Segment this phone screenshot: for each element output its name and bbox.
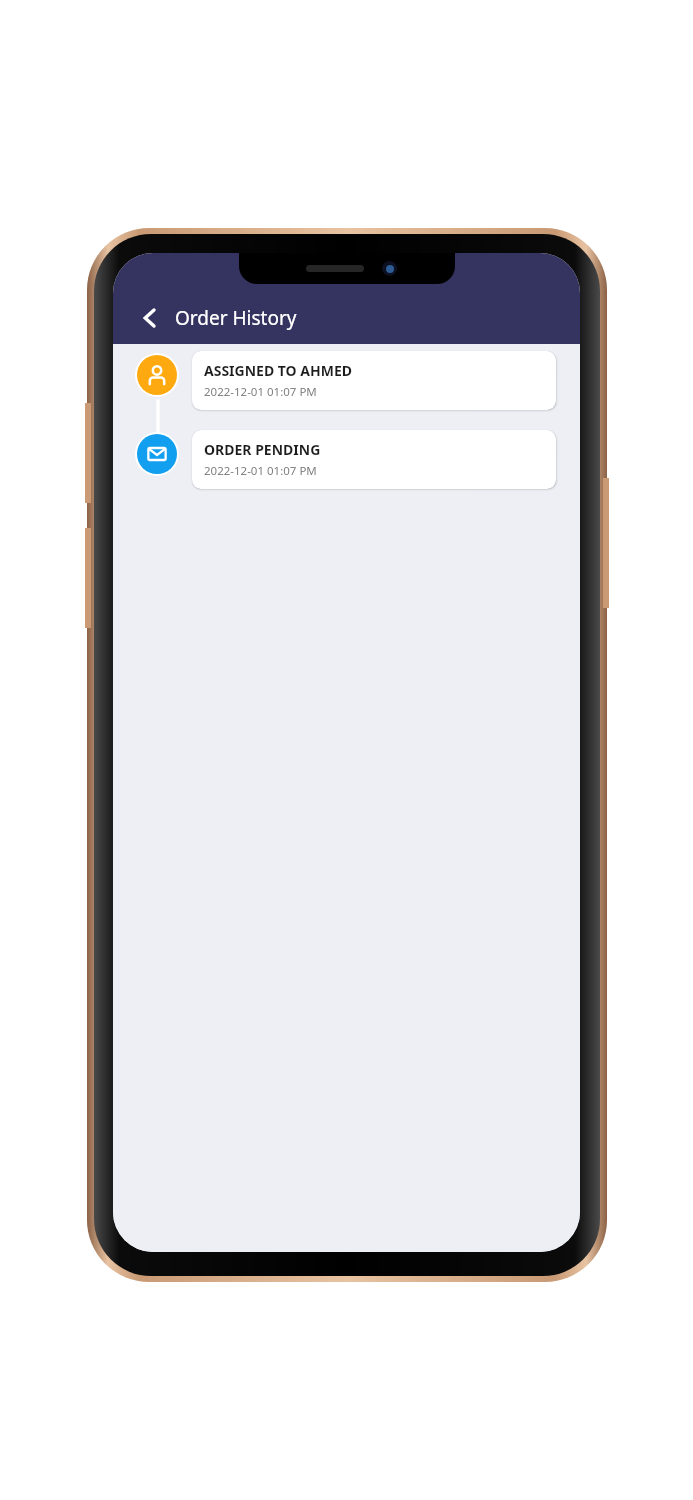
button[interactable]: ASSIGNED TO AHMED	[192, 351, 556, 410]
staticText: 2022-12-01 01:07 PM	[204, 463, 317, 479]
staticText: 2022-12-01 01:07 PM	[204, 384, 317, 400]
button[interactable]: ORDER PENDING	[192, 430, 556, 489]
staticText: ASSIGNED TO AHMED	[204, 361, 353, 380]
staticText: ORDER PENDING	[204, 440, 321, 459]
button[interactable]: ORDER PENDING	[113, 430, 580, 489]
button[interactable]: Back	[133, 301, 167, 335]
button[interactable]: ASSIGNED TO AHMED	[113, 351, 580, 410]
staticText: Order History	[175, 305, 297, 331]
